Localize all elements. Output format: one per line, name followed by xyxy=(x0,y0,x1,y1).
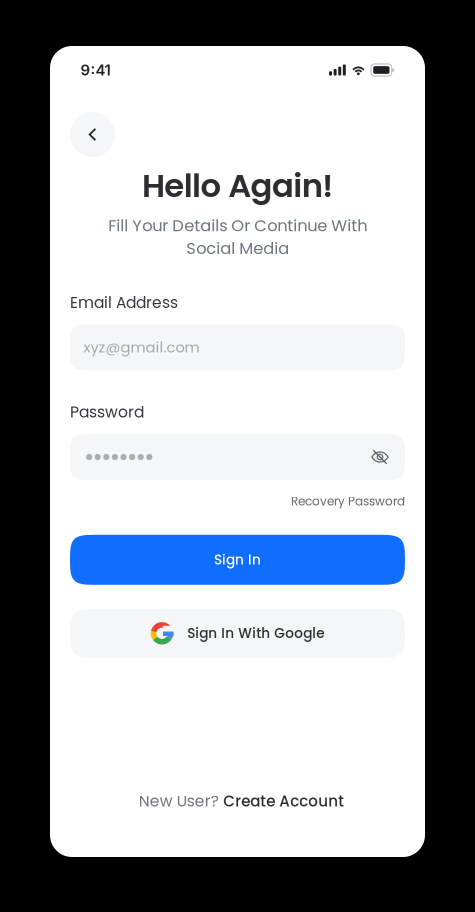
staticText: 9:41 xyxy=(80,61,110,79)
staticText: Create Account xyxy=(223,791,344,812)
staticText: Recovery Password xyxy=(291,493,405,510)
button[interactable]: New User? xyxy=(131,790,344,812)
staticText: xyz@gmail.com xyxy=(84,337,200,358)
staticText: Email Address xyxy=(70,292,178,313)
button[interactable]: Show password xyxy=(371,449,389,465)
button[interactable]: Sign In xyxy=(70,535,405,585)
button[interactable]: Back xyxy=(70,112,115,157)
staticText: Fill Your Details Or Continue With Socia… xyxy=(108,214,367,260)
button[interactable]: Sign In With Google xyxy=(70,609,405,658)
staticText: Sign In xyxy=(214,550,261,569)
staticText: New User? xyxy=(139,790,219,812)
staticText: Sign In With Google xyxy=(187,624,324,643)
staticText: Hello Again! xyxy=(142,163,333,208)
button[interactable]: Recovery Password xyxy=(291,493,405,510)
staticText: Password xyxy=(70,401,144,423)
